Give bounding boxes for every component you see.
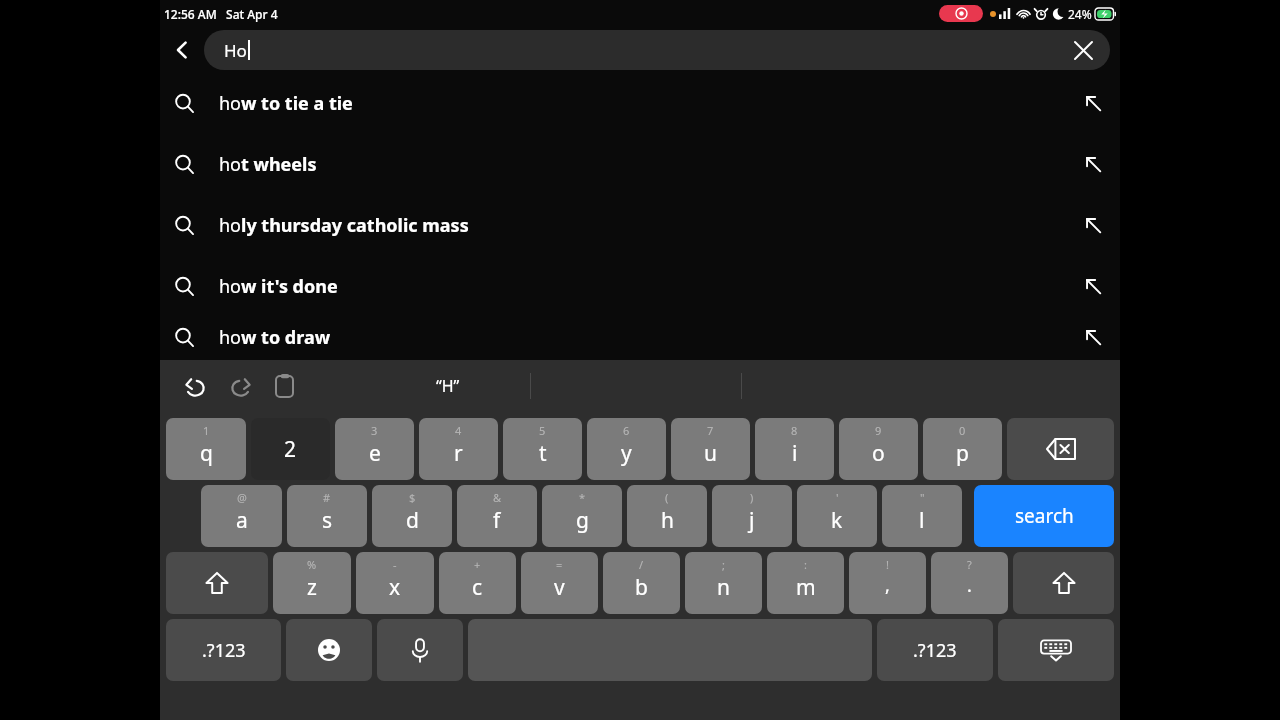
staticText: 1 <box>203 423 210 438</box>
button[interactable]: ; <box>685 552 762 614</box>
button[interactable]: ! <box>849 552 926 614</box>
button[interactable]: Hide keyboard <box>998 619 1114 681</box>
button[interactable]: ' <box>797 485 877 547</box>
staticText: = <box>556 557 563 572</box>
button[interactable]: 2 <box>251 418 330 480</box>
staticText: : <box>804 557 807 572</box>
button[interactable]: Voice input <box>377 619 463 681</box>
staticText: ) <box>750 490 754 505</box>
staticText: m <box>796 573 816 602</box>
staticText: q <box>200 439 213 468</box>
button[interactable]: % <box>273 552 351 614</box>
button[interactable]: Clear <box>1066 33 1100 67</box>
button[interactable]: 4 <box>419 418 498 480</box>
staticText: 9 <box>875 423 882 438</box>
staticText: ! <box>886 557 889 572</box>
button[interactable]: Emoji <box>286 619 372 681</box>
staticText: / <box>639 557 644 572</box>
staticText: t <box>539 439 547 468</box>
button[interactable]: Insert suggestion <box>1066 73 1120 134</box>
staticText: j <box>749 506 755 535</box>
staticText: " <box>920 490 925 505</box>
staticText: 12:56 AM Sat Apr 4 <box>164 6 278 22</box>
staticText: z <box>307 573 317 602</box>
button[interactable]: 5 <box>503 418 582 480</box>
staticText: & <box>493 490 502 505</box>
button[interactable]: Back <box>160 27 204 73</box>
staticText: k <box>831 506 843 535</box>
staticText: 3 <box>371 423 378 438</box>
staticText: o <box>872 439 885 468</box>
staticText: + <box>474 557 481 572</box>
button[interactable]: how to tie a tie <box>160 73 1120 134</box>
button[interactable]: 7 <box>671 418 750 480</box>
button[interactable]: Ho <box>204 30 1110 70</box>
button[interactable]: : <box>767 552 844 614</box>
button[interactable]: $ <box>372 485 452 547</box>
button[interactable]: 0 <box>923 418 1002 480</box>
button[interactable]: ( <box>627 485 707 547</box>
staticText: % <box>307 557 317 572</box>
button[interactable]: how to draw <box>160 317 1120 357</box>
staticText: 24% <box>1068 6 1092 22</box>
button[interactable]: how it's done <box>160 256 1120 317</box>
staticText: how to draw <box>219 325 331 350</box>
button[interactable]: ) <box>712 485 792 547</box>
button[interactable]: Clipboard <box>264 366 304 406</box>
button[interactable]: ? <box>931 552 1008 614</box>
staticText: l <box>919 506 925 535</box>
button[interactable]: Redo <box>220 366 260 406</box>
staticText: 7 <box>707 423 714 438</box>
staticText: how it's done <box>219 274 338 299</box>
button[interactable]: Insert suggestion <box>1066 317 1120 357</box>
button[interactable]: Insert suggestion <box>1066 256 1120 317</box>
staticText: ? <box>967 557 972 572</box>
button[interactable]: / <box>603 552 680 614</box>
staticText: y <box>621 439 632 468</box>
button[interactable]: Shift <box>1013 552 1114 614</box>
button[interactable]: .?123 <box>166 619 281 681</box>
button[interactable]: Undo <box>176 366 216 406</box>
staticText: 2 <box>284 435 297 464</box>
button[interactable]: Insert suggestion <box>1066 134 1120 195</box>
button[interactable]: 9 <box>839 418 918 480</box>
button[interactable]: * <box>542 485 622 547</box>
button[interactable]: " <box>882 485 962 547</box>
button[interactable]: holy thursday catholic mass <box>160 195 1120 256</box>
button[interactable]: .?123 <box>877 619 993 681</box>
staticText: Ho <box>224 39 247 62</box>
button[interactable]: 1 <box>166 418 246 480</box>
button[interactable]: 8 <box>755 418 834 480</box>
staticText: a <box>236 506 248 535</box>
staticText: b <box>635 573 648 602</box>
button[interactable]: Shift <box>166 552 268 614</box>
staticText: n <box>717 573 730 602</box>
staticText: 6 <box>623 423 630 438</box>
button[interactable]: = <box>521 552 598 614</box>
button[interactable]: Backspace <box>1007 418 1114 480</box>
staticText: c <box>472 573 483 602</box>
button[interactable]: 6 <box>587 418 666 480</box>
button[interactable]: “H” <box>365 360 530 412</box>
button[interactable]: Insert suggestion <box>1066 195 1120 256</box>
staticText: e <box>369 439 381 468</box>
staticText: 5 <box>539 423 546 438</box>
button[interactable]: @ <box>201 485 282 547</box>
staticText: hot wheels <box>219 152 317 177</box>
staticText: .?123 <box>913 638 957 663</box>
staticText: g <box>576 506 589 535</box>
button[interactable]: - <box>356 552 434 614</box>
staticText: # <box>323 490 331 505</box>
staticText: h <box>661 506 674 535</box>
staticText: v <box>554 573 565 602</box>
staticText: . <box>967 573 972 598</box>
button[interactable]: + <box>439 552 516 614</box>
button[interactable]: search <box>974 485 1114 547</box>
button[interactable]: & <box>457 485 537 547</box>
button[interactable]: 3 <box>335 418 414 480</box>
button[interactable]: hot wheels <box>160 134 1120 195</box>
button[interactable]: # <box>287 485 367 547</box>
